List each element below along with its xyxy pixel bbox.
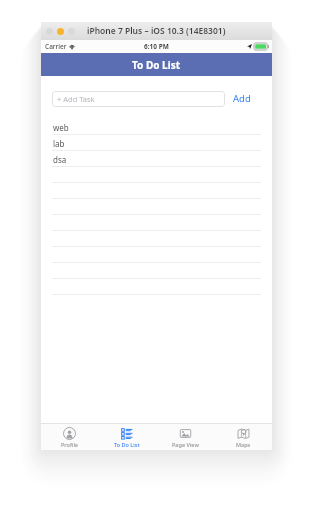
staticText: web xyxy=(53,122,69,133)
button[interactable] xyxy=(52,199,261,215)
staticText: + Add Task xyxy=(57,94,95,104)
button[interactable] xyxy=(52,231,261,247)
staticText: iPhone 7 Plus – iOS 10.3 (14E8301) xyxy=(87,25,226,37)
button[interactable]: + Add Task xyxy=(52,91,225,107)
button[interactable] xyxy=(52,263,261,279)
button[interactable]: Close xyxy=(46,28,53,35)
staticText: Profile xyxy=(61,441,79,448)
staticText: To Do List xyxy=(114,441,140,448)
button[interactable]: Zoom xyxy=(68,28,75,35)
button[interactable] xyxy=(52,247,261,263)
staticText: 6:10 PM xyxy=(144,42,169,51)
button[interactable] xyxy=(52,183,261,199)
staticText: Carrier xyxy=(45,42,67,51)
button[interactable]: Profile xyxy=(41,424,98,450)
button[interactable]: Add xyxy=(225,89,259,108)
staticText: Page View xyxy=(172,441,199,448)
staticText: Maps xyxy=(236,441,251,448)
staticText: To Do List xyxy=(132,58,181,72)
button[interactable] xyxy=(52,167,261,183)
button[interactable]: dsa xyxy=(52,151,261,167)
button[interactable] xyxy=(52,279,261,295)
button[interactable] xyxy=(52,215,261,231)
button[interactable]: Minimize xyxy=(57,28,64,35)
button[interactable]: lab xyxy=(52,135,261,151)
staticText: lab xyxy=(53,138,65,149)
button[interactable]: To Do List xyxy=(98,424,156,450)
staticText: dsa xyxy=(53,154,67,165)
button[interactable]: web xyxy=(52,119,261,135)
staticText: Add xyxy=(233,92,251,105)
button[interactable]: Maps xyxy=(214,424,272,450)
button[interactable]: Page View xyxy=(156,424,214,450)
